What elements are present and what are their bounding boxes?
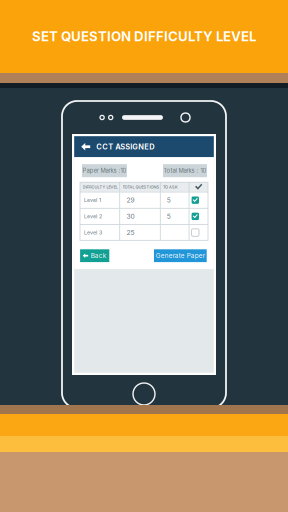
button[interactable]: Toggle Level 1: [189, 192, 208, 208]
button[interactable]: Toggle Level 3: [189, 225, 208, 240]
staticText: TOTAL QUESTIONS: [123, 184, 160, 189]
button[interactable]: Toggle Level 2: [189, 209, 208, 224]
staticText: 25: [127, 228, 135, 237]
staticText: SET QUESTION DIFFICULTY LEVEL: [32, 28, 256, 44]
staticText: CCT ASSIGNED: [96, 142, 154, 151]
staticText: Total Marks : 10: [163, 167, 206, 174]
staticText: DIFFICULTY LEVEL: [82, 184, 117, 189]
staticText: 30: [127, 212, 135, 220]
staticText: Paper Marks :10: [82, 167, 126, 174]
staticText: TO ASK: [163, 184, 178, 189]
staticText: 5: [167, 196, 171, 204]
staticText: Back: [91, 252, 107, 259]
staticText: 29: [127, 196, 135, 204]
staticText: Level 1: [84, 197, 101, 203]
button[interactable]: CCT ASSIGNED: [74, 136, 214, 157]
staticText: 5: [167, 212, 171, 220]
staticText: Level 2: [84, 213, 102, 220]
staticText: Generate Paper: [156, 252, 205, 259]
button[interactable]: Back: [80, 249, 109, 262]
staticText: Level 3: [84, 229, 102, 236]
button[interactable]: Generate Paper: [154, 249, 207, 262]
